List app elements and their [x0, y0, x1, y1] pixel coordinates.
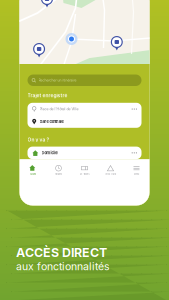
staticText: aux fonctionnalités	[16, 260, 110, 273]
staticText: Menu	[134, 173, 139, 176]
staticText: Accueil	[30, 173, 35, 176]
staticText: Rechercher un itinéraire	[38, 78, 76, 82]
button[interactable]: Horaires	[45, 165, 71, 176]
staticText: Domicile	[41, 150, 57, 155]
button[interactable]: Rechercher un itinéraire	[19, 74, 149, 86]
button[interactable]: Mt Tickets	[71, 165, 97, 176]
staticText: Mt Tickets	[79, 173, 89, 176]
button[interactable]: Accueil	[19, 165, 45, 176]
staticText: Place de l'Hôtel de Ville	[39, 107, 78, 111]
staticText: Infos trafic	[105, 173, 116, 176]
staticText: Gare centrale	[39, 119, 63, 124]
staticText: On y va ?	[27, 137, 49, 143]
staticText: Horaires	[55, 173, 62, 176]
button[interactable]: Infos trafic	[97, 165, 123, 176]
button[interactable]: Menu	[123, 165, 149, 176]
staticText: ACCÈS DIRECT	[16, 245, 107, 260]
staticText: Trajet enregistré	[27, 92, 67, 98]
button[interactable]: Domicile	[19, 147, 149, 159]
